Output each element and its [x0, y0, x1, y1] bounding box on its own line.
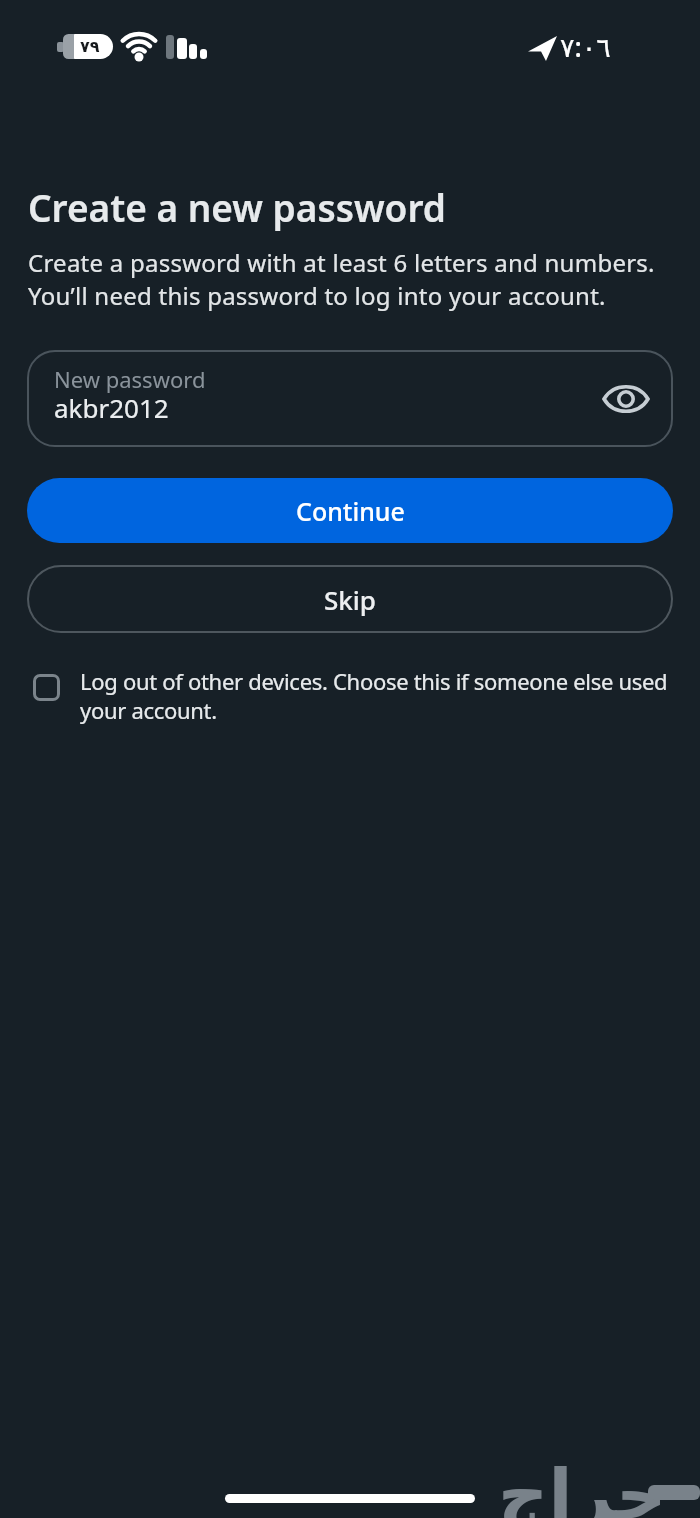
staticText: Create a password with at least 6 letter… [28, 246, 655, 312]
staticText: Skip [324, 582, 376, 617]
staticText: Continue [296, 494, 405, 528]
staticText: ٧:٠٦ [560, 28, 611, 65]
button[interactable]: Log out of other devices. Choose this if… [33, 666, 668, 726]
staticText: ٧٩ [80, 37, 100, 56]
staticText: Create a new password [28, 182, 446, 232]
button[interactable]: Continue [27, 478, 673, 543]
button[interactable]: New password [27, 350, 673, 447]
staticText: akbr2012 [54, 390, 169, 425]
staticText: Log out of other devices. Choose this if… [80, 666, 668, 726]
staticText: حراج [498, 1454, 667, 1518]
staticText: New password [54, 364, 206, 394]
button[interactable]: Skip [27, 565, 673, 633]
